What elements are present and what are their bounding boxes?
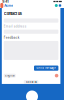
- staticText: 9:41: [2, 0, 8, 3]
- staticText: Contact us: [4, 11, 22, 16]
- staticText: Email address: [4, 25, 27, 28]
- staticText: Acme: [4, 4, 13, 7]
- button[interactable]: About us: [24, 80, 38, 84]
- button[interactable]: English: [4, 74, 16, 77]
- staticText: Feedback: [4, 36, 20, 39]
- button[interactable]: Send message: [34, 65, 58, 71]
- staticText: About us: [26, 80, 37, 84]
- staticText: English: [5, 74, 14, 77]
- staticText: Send message: [36, 66, 56, 70]
